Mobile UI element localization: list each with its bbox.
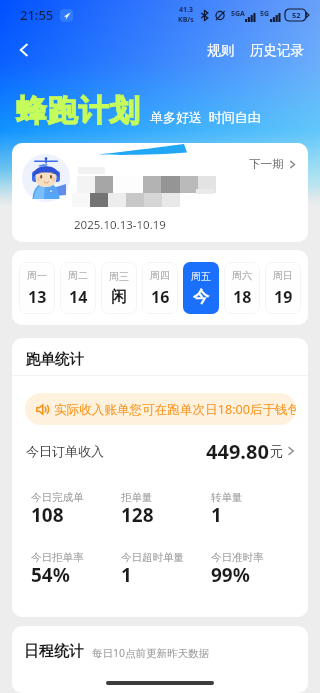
button[interactable]: 历史记录 (248, 38, 306, 63)
staticText: 下一期 (249, 157, 284, 171)
staticText: 21:55 (20, 6, 54, 24)
staticText: 19 (274, 286, 293, 308)
staticText: 1 (121, 562, 132, 588)
staticText: 今日超时单量 (121, 551, 184, 564)
staticText: KB/s (178, 15, 194, 25)
staticText: 18 (233, 286, 252, 308)
staticText: 今日拒单率 (31, 551, 84, 564)
staticText: 每日10点前更新昨天数据 (92, 646, 210, 660)
staticText: 今 (193, 287, 209, 307)
staticText: 日程统计 (24, 642, 84, 661)
staticText: 拒单量 (121, 491, 153, 504)
button[interactable]: 今日订单收入 (26, 438, 296, 464)
staticText: 单多好送 时间自由 (150, 108, 261, 126)
staticText: 蜂跑计划 (16, 92, 141, 130)
staticText: 449.80 (206, 438, 269, 464)
staticText: 今日订单收入 (26, 443, 104, 459)
staticText: 跑单统计 (26, 350, 84, 368)
staticText: 今日准时率 (211, 551, 264, 564)
staticText: 14 (69, 286, 88, 308)
staticText: 今日完成单 (31, 491, 84, 504)
button[interactable]: Back (6, 32, 42, 68)
button[interactable]: 下一期 (247, 155, 299, 173)
button[interactable]: 周三 (101, 262, 137, 314)
staticText: 实际收入账单您可在跑单次日18:00后于钱包查看 (54, 401, 296, 418)
staticText: 周日 (273, 269, 293, 282)
staticText: 1 (211, 502, 222, 528)
staticText: 规则 (207, 42, 234, 59)
staticText: 周三 (109, 270, 129, 283)
button[interactable]: 下一期 (12, 143, 308, 242)
staticText: 2025.10.13-10.19 (74, 217, 166, 233)
staticText: 周二 (68, 269, 88, 282)
staticText: 周五 (191, 270, 211, 283)
staticText: 52 (292, 10, 301, 20)
button[interactable]: 规则 (201, 38, 240, 63)
staticText: 13 (28, 286, 47, 308)
staticText: 16 (151, 286, 170, 308)
button[interactable]: 周五 (183, 262, 219, 314)
button[interactable]: 周六 (224, 262, 260, 314)
staticText: 5G (260, 9, 270, 19)
button[interactable]: 周四 (142, 262, 178, 314)
staticText: 108 (31, 502, 64, 528)
staticText: 周四 (150, 269, 170, 282)
button[interactable]: 周日 (265, 262, 301, 314)
staticText: 闲 (111, 287, 127, 307)
staticText: 周一 (27, 269, 47, 282)
button[interactable]: 周一 (19, 262, 55, 314)
staticText: 周六 (232, 269, 252, 282)
staticText: 128 (121, 502, 154, 528)
staticText: 99% (211, 562, 250, 588)
staticText: 历史记录 (250, 42, 304, 59)
staticText: 元 (270, 443, 284, 460)
staticText: 5GA (231, 9, 245, 19)
staticText: 54% (31, 562, 70, 588)
staticText: 转单量 (211, 491, 243, 504)
staticText: 41.3 (179, 5, 193, 15)
button[interactable]: 周二 (60, 262, 96, 314)
